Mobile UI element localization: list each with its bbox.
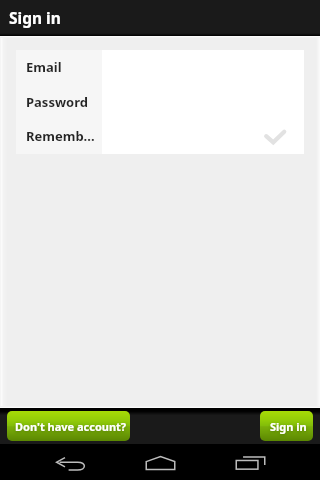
other: Remember me, checked xyxy=(264,130,286,144)
staticText: Rememb... xyxy=(26,127,95,145)
button[interactable]: Recent apps xyxy=(214,445,286,480)
staticText: Password xyxy=(26,93,88,111)
button[interactable]: Email xyxy=(16,50,304,85)
button[interactable]: Back xyxy=(35,446,107,480)
button[interactable]: Password xyxy=(16,85,304,120)
staticText: Don't have account? xyxy=(15,419,127,434)
button[interactable]: Sign in xyxy=(260,411,313,441)
staticText: Email xyxy=(26,58,62,76)
button[interactable]: Home xyxy=(124,445,196,480)
staticText: Sign in xyxy=(9,7,61,28)
button[interactable]: Don't have account? xyxy=(7,411,130,441)
button[interactable]: Rememb... xyxy=(16,120,304,154)
staticText: Sign in xyxy=(270,419,307,434)
